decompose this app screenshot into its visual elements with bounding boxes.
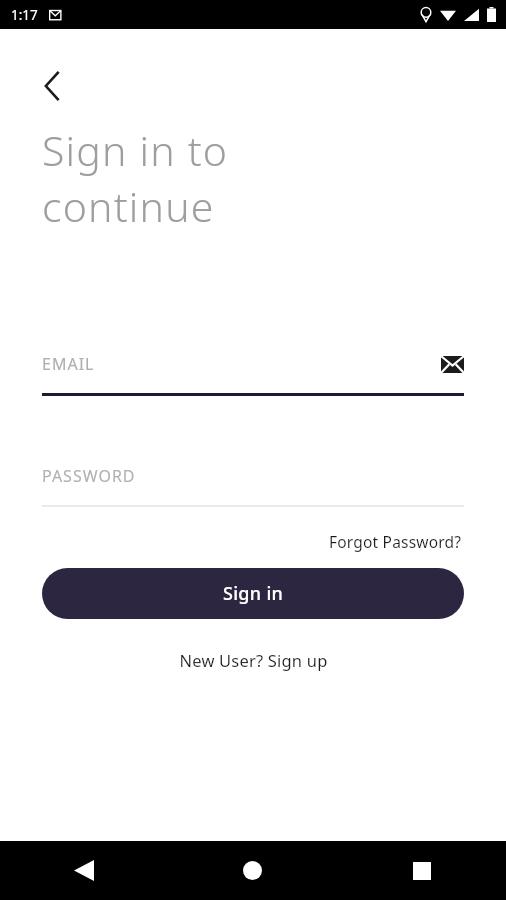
button[interactable]: New User? Sign up [175,645,332,675]
button[interactable]: Home [168,841,337,900]
button[interactable]: Recents [337,841,506,900]
staticText: Forgot Password? [329,531,462,552]
button[interactable]: EMAIL [42,348,464,396]
staticText: New User? Sign up [179,649,328,671]
staticText: PASSWORD [42,465,136,487]
staticText: 1:17 [11,6,38,24]
staticText: EMAIL [42,353,441,375]
button[interactable]: Sign in [42,568,464,619]
button[interactable]: Back [0,841,168,900]
button[interactable]: Back [30,64,74,108]
button[interactable]: PASSWORD [42,460,464,507]
staticText: Sign in to continue [42,122,229,234]
staticText: Sign in [223,581,284,606]
button[interactable]: Forgot Password? [327,529,464,554]
